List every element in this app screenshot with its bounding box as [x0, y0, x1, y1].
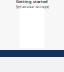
staticText: Getting started	[16, 0, 48, 4]
staticText: Set up your account	[15, 4, 48, 9]
